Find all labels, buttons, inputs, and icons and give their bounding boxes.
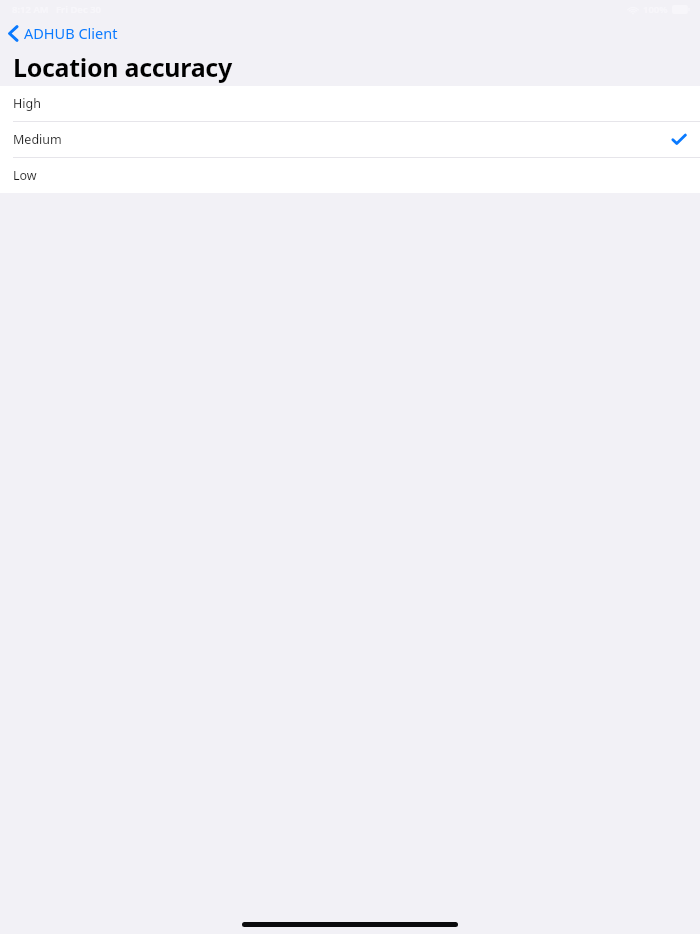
staticText: Location accuracy [13,50,232,84]
button[interactable]: Medium [0,122,700,157]
staticText: Low [13,167,37,184]
button[interactable]: High [0,86,700,121]
button[interactable]: Low [0,158,700,193]
other: Back [8,25,19,42]
staticText: Medium [13,131,62,148]
staticText: High [13,95,41,112]
other: Selected [672,134,686,145]
staticText: ADHUB Client [24,23,118,43]
button[interactable]: Back [0,18,130,48]
